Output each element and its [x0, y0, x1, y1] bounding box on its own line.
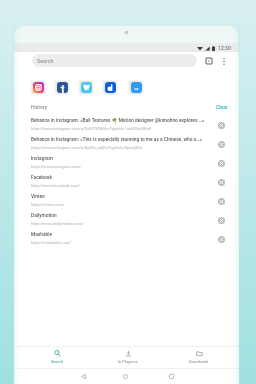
button[interactable]: Back — [76, 369, 90, 383]
staticText: Vimeo — [31, 194, 45, 200]
button[interactable]: Remove — [215, 157, 227, 169]
button[interactable]: Instagram — [14, 153, 239, 172]
staticText: Search — [51, 359, 63, 364]
button[interactable]: Remove — [215, 233, 227, 245]
staticText: History — [31, 104, 47, 110]
staticText: Mashable — [31, 232, 53, 238]
button[interactable]: Remove — [215, 138, 227, 150]
button[interactable]: Clear — [213, 101, 231, 113]
button[interactable]: Facebook — [53, 78, 71, 96]
staticText: In Progress — [118, 359, 138, 364]
staticText: Behance in Instagram: «Bali Textures 🌴 M… — [31, 118, 205, 124]
button[interactable]: Search — [32, 54, 197, 67]
staticText: Dailymotion — [31, 213, 57, 219]
button[interactable]: Facebook — [14, 172, 239, 191]
staticText: Instagram — [31, 156, 53, 162]
staticText: https://mashable.com/ — [31, 240, 71, 245]
button[interactable]: Vimeo — [14, 191, 239, 210]
button[interactable]: Remove — [215, 214, 227, 226]
staticText: Behance in Instagram: «This is especiall… — [31, 137, 203, 143]
staticText: Clear — [216, 104, 228, 110]
button[interactable]: In Progress — [106, 347, 150, 367]
staticText: 12:30 — [218, 45, 231, 51]
button[interactable]: Remove — [215, 119, 227, 131]
button[interactable]: Remove — [215, 195, 227, 207]
staticText: https://www.instagram.com/p/By3Ss_oz4hr/… — [31, 145, 143, 150]
button[interactable]: Dailymotion — [101, 78, 119, 96]
staticText: https://www.facebook.com/ — [31, 183, 80, 188]
button[interactable]: Tabs — [202, 54, 216, 68]
button[interactable]: Downloads — [177, 347, 221, 367]
staticText: Search — [37, 58, 54, 64]
button[interactable]: Instagram — [29, 78, 47, 96]
staticText: https://vimeo.com/ — [31, 202, 65, 207]
button[interactable]: Behance in Instagram: «This is especiall… — [14, 134, 239, 153]
button[interactable]: Home — [118, 369, 132, 383]
button[interactable]: Recents — [164, 369, 178, 383]
button[interactable]: Vimeo — [77, 78, 95, 96]
button[interactable]: Remove — [215, 176, 227, 188]
button[interactable]: Dailymotion — [14, 210, 239, 229]
staticText: https://www.instagram.com/ — [31, 164, 81, 169]
staticText: https://www.dailymotion.com/ — [31, 221, 84, 226]
staticText: https://www.instagram.com/p/BzGfTSPAGhr/… — [31, 126, 151, 131]
button[interactable]: Search — [35, 347, 79, 367]
staticText: Downloads — [189, 359, 209, 364]
button[interactable]: Mashable — [14, 229, 239, 248]
button[interactable]: More options — [217, 54, 231, 68]
staticText: Facebook — [31, 175, 52, 181]
button[interactable]: VK — [127, 78, 145, 96]
button[interactable]: Behance in Instagram: «Bali Textures 🌴 M… — [14, 115, 239, 134]
